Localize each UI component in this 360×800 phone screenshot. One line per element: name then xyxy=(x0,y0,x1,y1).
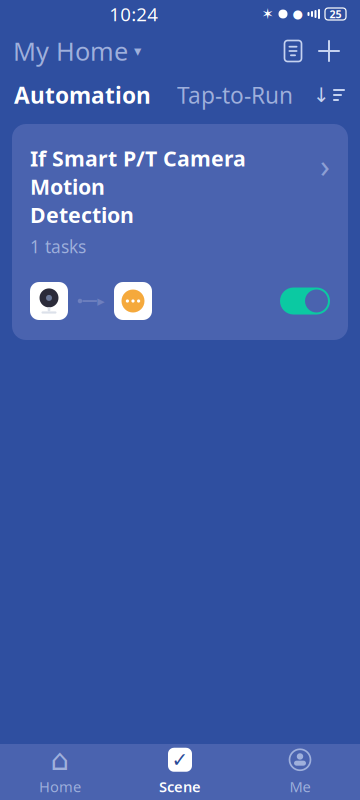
button[interactable]: Sort xyxy=(312,78,346,112)
button[interactable]: Enable automation xyxy=(280,287,330,314)
staticText: Automation xyxy=(14,80,151,110)
button[interactable]: ✓ xyxy=(120,741,240,800)
staticText: ● xyxy=(292,7,302,21)
staticText: 25 xyxy=(329,7,341,21)
button[interactable]: My Home xyxy=(13,26,147,76)
button[interactable]: Scene log xyxy=(275,33,311,69)
button[interactable]: Add xyxy=(311,33,347,69)
staticText: › xyxy=(320,144,330,186)
staticText: ✓ xyxy=(171,748,188,771)
staticText: ✶ xyxy=(261,6,273,22)
button[interactable]: Tap-to-Run xyxy=(151,72,293,118)
staticText: My Home xyxy=(13,34,128,68)
staticText: ▾ xyxy=(134,43,141,59)
staticText: 10:24 xyxy=(109,2,158,26)
button[interactable]: Automation xyxy=(14,72,151,118)
staticText: Home xyxy=(39,777,81,796)
button[interactable]: If Smart P/T Camera Motion Detection xyxy=(12,124,348,340)
staticText: ↓ xyxy=(313,84,330,106)
staticText: 1 tasks xyxy=(30,235,86,258)
staticText: Scene xyxy=(159,777,201,796)
staticText: ▸ xyxy=(97,293,104,309)
button[interactable]: ⌂ xyxy=(0,741,120,800)
staticText: Tap-to-Run xyxy=(177,80,293,110)
staticText: ⌂ xyxy=(50,743,69,776)
staticText: Me xyxy=(289,777,310,796)
staticText: If Smart P/T Camera Motion Detection xyxy=(30,144,246,229)
button[interactable]: Me xyxy=(240,741,360,800)
